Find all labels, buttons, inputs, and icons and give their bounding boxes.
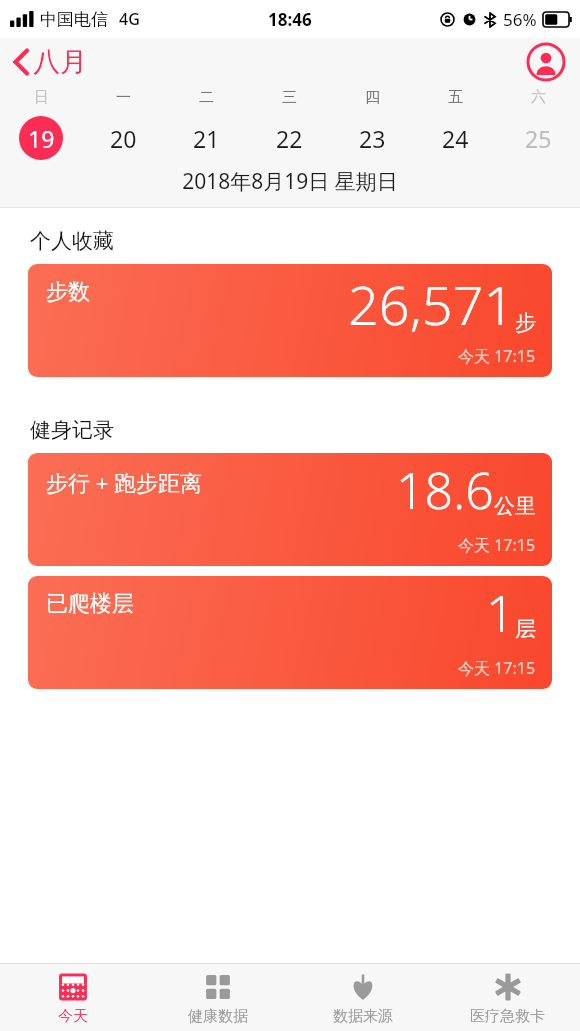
- staticText: 今天: [58, 1007, 88, 1026]
- staticText: 健身记录: [30, 417, 114, 443]
- staticText: 步: [515, 310, 536, 336]
- staticText: 六: [531, 88, 546, 107]
- staticText: 26,571: [348, 267, 515, 341]
- staticText: 25: [525, 123, 552, 154]
- staticText: 日: [34, 88, 49, 107]
- button[interactable]: 步行 + 跑步距离: [28, 453, 552, 566]
- button[interactable]: 医疗急救卡: [435, 964, 580, 1031]
- staticText: 中国电信: [40, 9, 108, 30]
- button[interactable]: 24: [414, 115, 497, 161]
- staticText: 层: [515, 616, 536, 642]
- staticText: 健康数据: [188, 1007, 248, 1026]
- staticText: 步行 + 跑步距离: [46, 467, 203, 497]
- staticText: 19: [28, 123, 55, 154]
- staticText: 今天 17:15: [458, 534, 536, 556]
- staticText: 18:46: [268, 8, 312, 31]
- staticText: 数据来源: [333, 1007, 393, 1026]
- button[interactable]: 八月: [0, 41, 97, 83]
- staticText: 三: [282, 88, 297, 107]
- staticText: 步数: [46, 278, 90, 306]
- staticText: 24: [442, 123, 469, 154]
- button[interactable]: 19: [0, 115, 82, 161]
- staticText: 四: [365, 88, 380, 107]
- button[interactable]: 今天: [0, 964, 145, 1031]
- button[interactable]: 健康数据: [145, 964, 290, 1031]
- button[interactable]: 已爬楼层: [28, 576, 552, 689]
- staticText: 22: [276, 123, 303, 154]
- staticText: 今天 17:15: [458, 345, 536, 367]
- staticText: 21: [193, 123, 220, 154]
- button[interactable]: 数据来源: [290, 964, 435, 1031]
- button[interactable]: 23: [331, 115, 414, 161]
- staticText: 1: [486, 579, 515, 647]
- staticText: 个人收藏: [30, 228, 114, 254]
- staticText: 八月: [33, 45, 87, 79]
- staticText: 23: [359, 123, 386, 154]
- button[interactable]: Profile: [526, 42, 566, 82]
- staticText: 五: [448, 88, 463, 107]
- button[interactable]: 步数: [28, 264, 552, 377]
- button[interactable]: 22: [248, 115, 331, 161]
- staticText: 2018年8月19日 星期日: [182, 167, 398, 196]
- button[interactable]: 21: [165, 115, 248, 161]
- button[interactable]: 20: [82, 115, 165, 161]
- staticText: 公里: [494, 493, 536, 519]
- staticText: 一: [116, 88, 131, 107]
- staticText: 18.6: [396, 456, 494, 524]
- staticText: 4G: [119, 8, 140, 30]
- staticText: 已爬楼层: [46, 590, 134, 618]
- staticText: 医疗急救卡: [470, 1007, 545, 1026]
- staticText: 56%: [503, 8, 537, 31]
- staticText: 20: [110, 123, 137, 154]
- staticText: 二: [199, 88, 214, 107]
- button[interactable]: 25: [497, 115, 580, 161]
- staticText: 今天 17:15: [458, 657, 536, 679]
